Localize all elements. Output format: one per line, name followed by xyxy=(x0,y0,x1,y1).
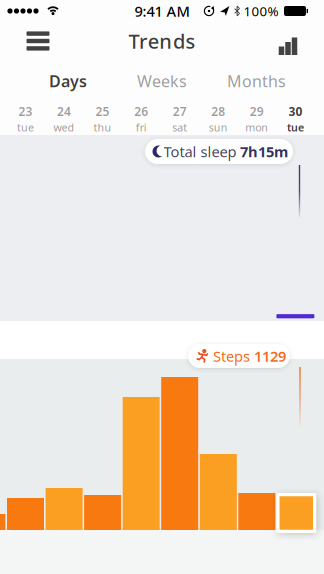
button[interactable]: 24 xyxy=(46,104,83,134)
staticText: Weeks xyxy=(137,70,187,92)
staticText: tue xyxy=(17,120,34,135)
button[interactable]: Charts xyxy=(273,29,303,55)
staticText: tue xyxy=(287,120,304,135)
staticText: 9:41 AM xyxy=(134,1,189,21)
button[interactable]: Menu xyxy=(20,26,56,56)
staticText: mon xyxy=(245,120,268,135)
staticText: 24 xyxy=(57,103,71,119)
staticText: fri xyxy=(136,120,147,135)
staticText: 25 xyxy=(96,103,110,119)
staticText: 23 xyxy=(18,103,32,119)
staticText: 29 xyxy=(250,103,264,119)
button[interactable]: 25 xyxy=(84,104,121,134)
staticText: 7h15m xyxy=(240,142,288,161)
staticText: 100% xyxy=(243,2,278,20)
button[interactable]: 27 xyxy=(161,104,198,134)
staticText: Total sleep xyxy=(163,142,236,161)
button[interactable]: 30 xyxy=(277,104,314,134)
staticText: 28 xyxy=(211,103,225,119)
staticText: Days xyxy=(49,70,87,92)
button[interactable]: 28 xyxy=(200,104,237,134)
staticText: wed xyxy=(54,120,75,135)
staticText: Months xyxy=(227,70,286,92)
staticText: Trends xyxy=(128,28,195,54)
button[interactable]: Months xyxy=(221,66,291,96)
staticText: 27 xyxy=(173,103,187,119)
button[interactable]: Steps on 30 tue xyxy=(276,493,316,533)
staticText: sun xyxy=(209,120,228,135)
staticText: 26 xyxy=(134,103,148,119)
staticText: thu xyxy=(94,120,112,135)
button[interactable]: 29 xyxy=(238,104,275,134)
staticText: 1129 xyxy=(254,346,286,366)
button[interactable]: 23 xyxy=(7,104,44,134)
staticText: Steps xyxy=(213,346,250,366)
staticText: sat xyxy=(172,120,187,135)
button[interactable]: Days xyxy=(33,66,103,96)
button[interactable]: 26 xyxy=(123,104,160,134)
button[interactable]: Weeks xyxy=(127,66,197,96)
staticText: 30 xyxy=(288,103,302,119)
